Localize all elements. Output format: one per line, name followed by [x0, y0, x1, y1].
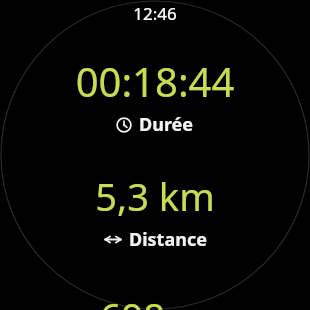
staticText: 12:46	[0, 2, 310, 25]
button[interactable]: 00:18:44	[0, 54, 310, 137]
staticText: Durée	[139, 112, 194, 137]
other: Distance	[104, 233, 122, 246]
staticText: 00:18:44	[0, 54, 310, 108]
staticText: 5,3 km	[0, 170, 310, 222]
staticText: Distance	[129, 227, 207, 252]
other: Durée	[116, 117, 132, 133]
staticText: 698 m	[0, 290, 310, 310]
button[interactable]: 698 m	[0, 290, 310, 310]
button[interactable]: 5,3 km	[0, 170, 310, 252]
